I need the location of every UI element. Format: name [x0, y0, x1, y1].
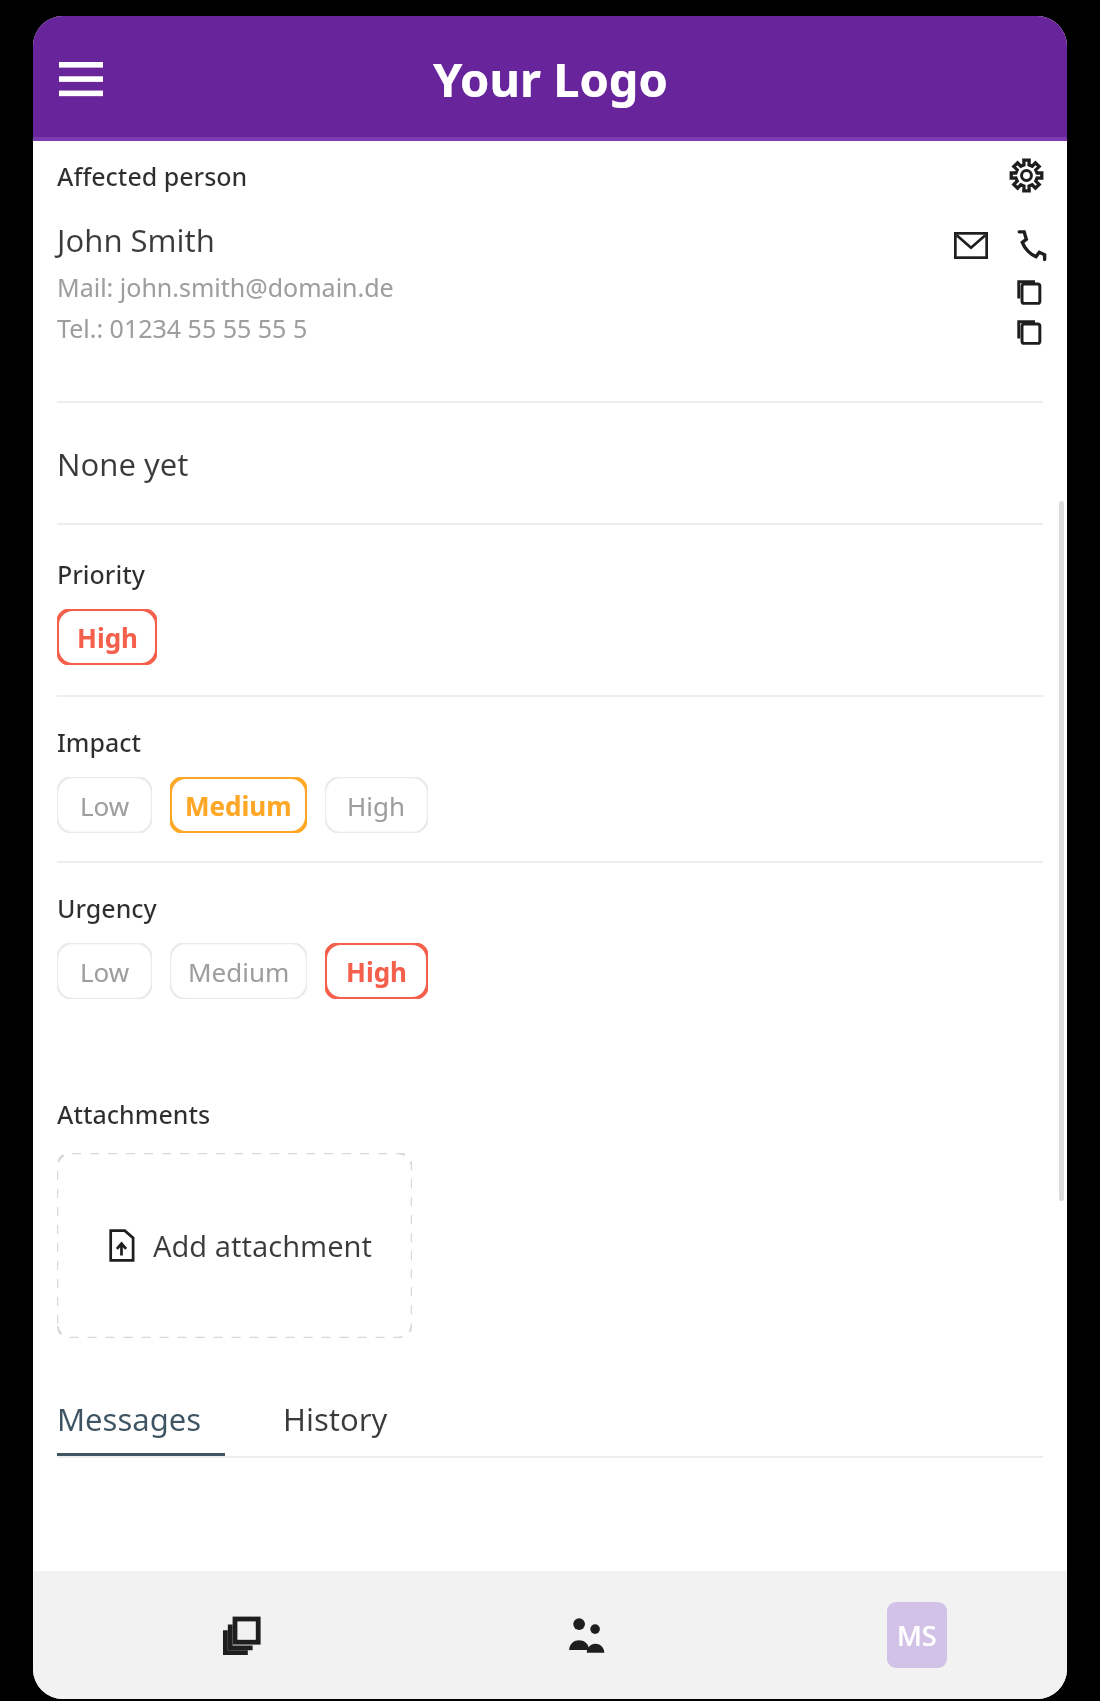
staticText: John Smith — [57, 219, 215, 261]
staticText: Low — [80, 788, 130, 823]
staticText: Attachments — [57, 1097, 211, 1131]
staticText: Tel.: 01234 55 55 55 5 — [57, 311, 308, 345]
button[interactable]: High — [57, 609, 157, 665]
staticText: None yet — [57, 443, 189, 485]
staticText: Medium — [188, 954, 290, 989]
button[interactable]: Low — [57, 943, 152, 999]
button[interactable]: Medium — [170, 943, 307, 999]
staticText: Add attachment — [153, 1226, 372, 1265]
button[interactable]: Messages — [57, 1398, 235, 1458]
button[interactable]: Copy phone number — [1004, 307, 1052, 355]
button[interactable]: Low — [57, 777, 152, 833]
staticText: MS — [897, 1617, 937, 1654]
button[interactable]: History — [283, 1398, 388, 1440]
button[interactable]: Add attachment — [57, 1153, 412, 1338]
staticText: History — [283, 1398, 388, 1440]
button[interactable]: High — [325, 777, 428, 833]
staticText: High — [347, 788, 406, 823]
button[interactable]: High — [325, 943, 428, 999]
button[interactable]: Copy e-mail address — [1004, 267, 1052, 315]
staticText: Priority — [57, 557, 145, 591]
button[interactable]: Contacts — [545, 1595, 625, 1675]
button[interactable]: Send mail — [945, 219, 997, 271]
button[interactable]: Tickets — [203, 1595, 283, 1675]
staticText: Mail: john.smith@domain.de — [57, 270, 394, 304]
button[interactable]: Open navigation menu — [51, 49, 111, 109]
staticText: Your Logo — [433, 47, 668, 111]
staticText: High — [77, 620, 138, 655]
staticText: Urgency — [57, 891, 157, 925]
staticText: Affected person — [57, 159, 248, 193]
button[interactable]: Medium — [170, 777, 307, 833]
button[interactable]: Call — [1002, 219, 1054, 271]
staticText: High — [346, 954, 407, 989]
staticText: Messages — [57, 1398, 202, 1440]
staticText: Low — [80, 954, 130, 989]
staticText: Impact — [57, 725, 142, 759]
button[interactable]: Settings — [998, 147, 1054, 203]
staticText: Medium — [185, 788, 292, 823]
button[interactable]: Profile MS — [887, 1602, 947, 1668]
